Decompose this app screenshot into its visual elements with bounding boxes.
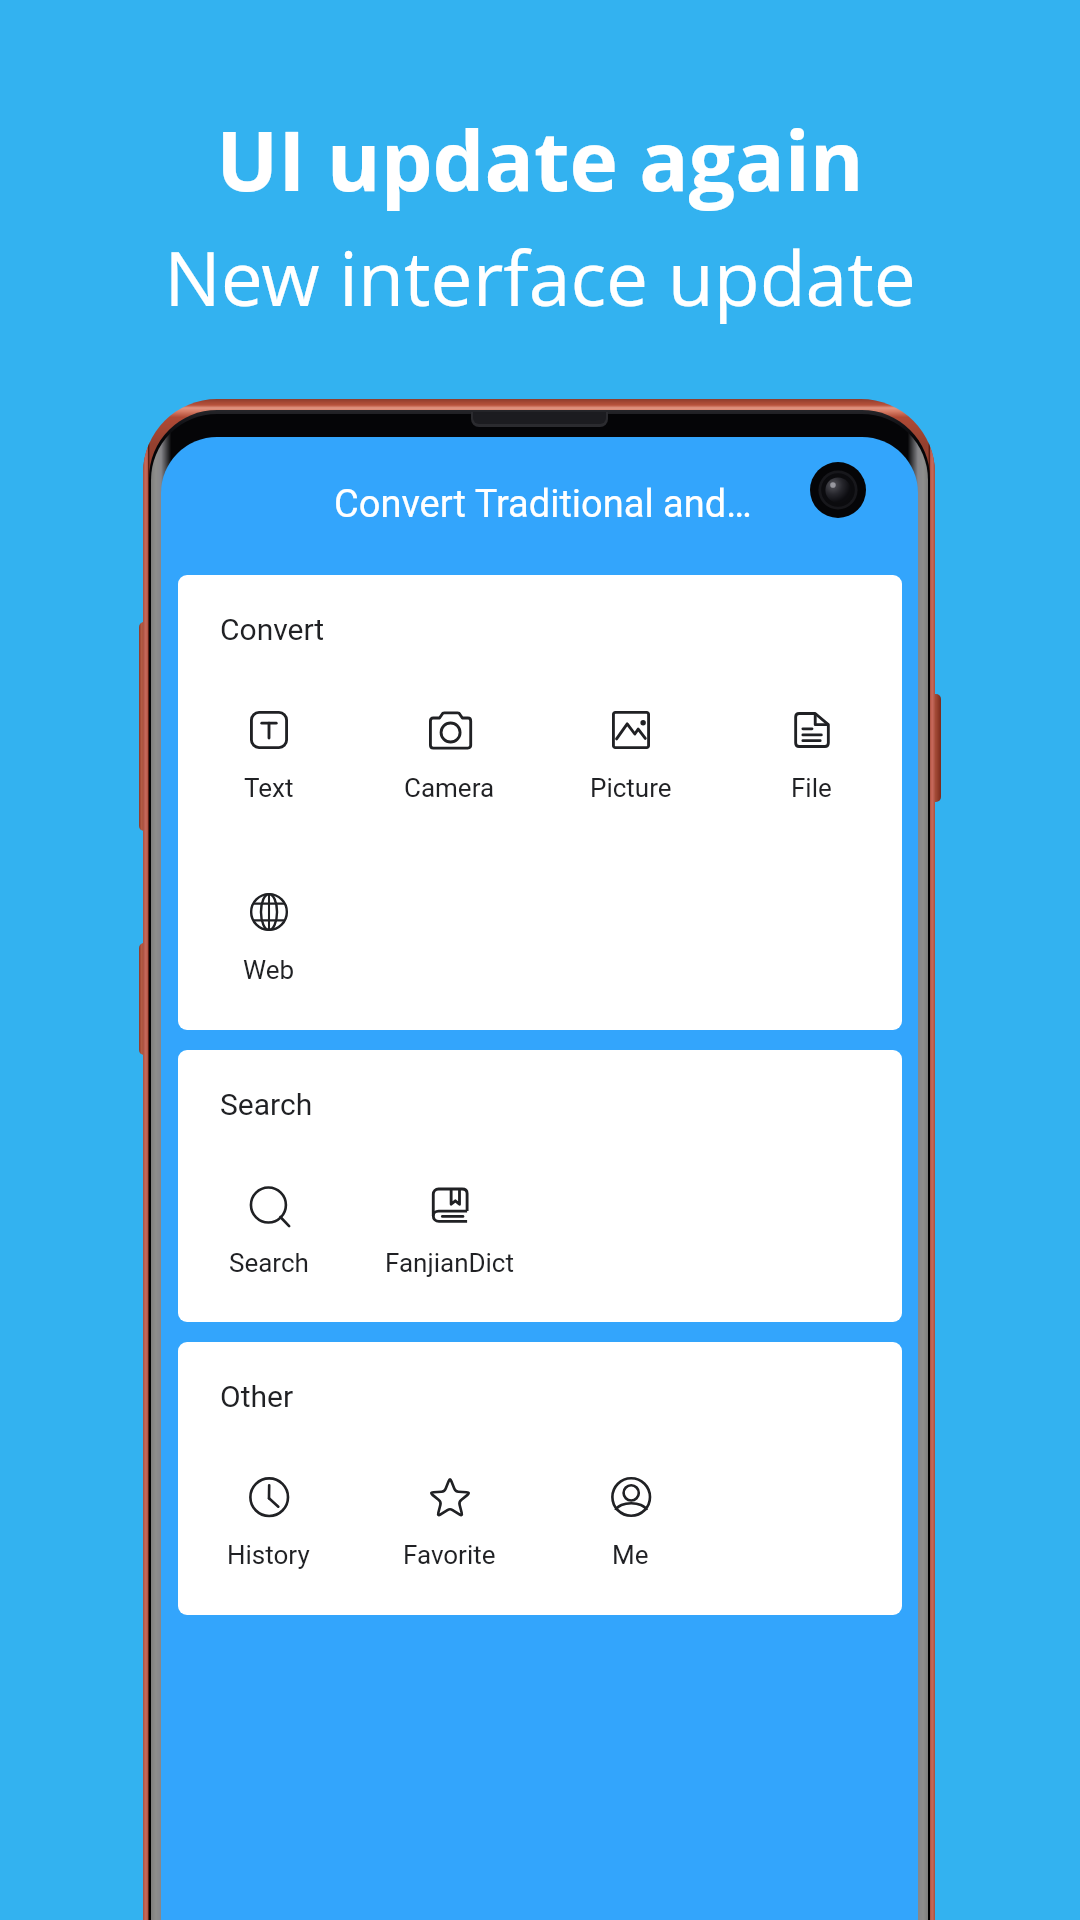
- button[interactable]: File: [721, 711, 902, 803]
- button[interactable]: FanjianDict: [359, 1186, 540, 1278]
- button[interactable]: Camera: [359, 711, 540, 803]
- staticText: Convert: [220, 612, 325, 647]
- staticText: Other: [220, 1379, 294, 1414]
- button[interactable]: Picture: [540, 711, 721, 803]
- staticText: Web: [243, 955, 295, 985]
- staticText: Convert Traditional and…: [334, 482, 752, 527]
- staticText: UI update again: [216, 103, 864, 215]
- staticText: File: [791, 773, 832, 803]
- staticText: Favorite: [403, 1540, 496, 1570]
- staticText: Search: [229, 1248, 309, 1278]
- button[interactable]: Search: [178, 1186, 359, 1278]
- button[interactable]: Me: [540, 1478, 721, 1570]
- button[interactable]: Text: [178, 711, 359, 803]
- staticText: Picture: [590, 773, 672, 803]
- staticText: Text: [244, 773, 294, 803]
- button[interactable]: Web: [178, 893, 359, 985]
- staticText: FanjianDict: [385, 1248, 514, 1278]
- staticText: Me: [612, 1540, 649, 1570]
- staticText: Camera: [404, 773, 495, 803]
- button[interactable]: Favorite: [359, 1478, 540, 1570]
- other: Front camera: [810, 462, 866, 518]
- staticText: New interface update: [164, 226, 916, 328]
- button[interactable]: History: [178, 1478, 359, 1570]
- staticText: Search: [220, 1087, 313, 1122]
- staticText: History: [227, 1540, 310, 1570]
